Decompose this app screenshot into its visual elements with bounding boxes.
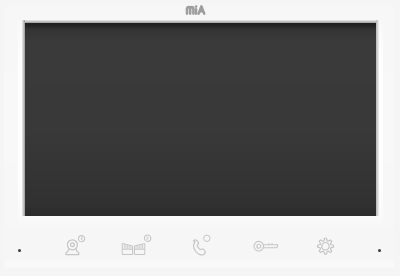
button[interactable]: Unlock [245,230,281,258]
button[interactable]: Monitoring [118,230,152,258]
button[interactable]: Call [184,230,218,258]
button[interactable]: Camera [56,230,90,258]
button[interactable]: Settings [308,230,342,258]
